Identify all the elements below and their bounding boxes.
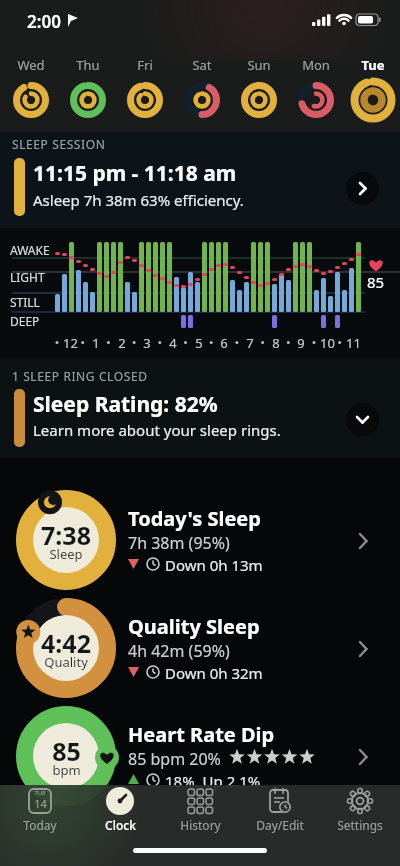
button[interactable]: 85	[0, 702, 400, 810]
staticText: 5	[195, 334, 203, 350]
staticText: Thu	[76, 56, 100, 72]
staticText: Today's Sleep	[128, 505, 261, 532]
staticText: Quality	[44, 653, 88, 671]
staticText: 1 SLEEP RING CLOSED	[12, 368, 148, 384]
staticText: AWAKE	[10, 242, 50, 258]
staticText: History	[180, 817, 221, 833]
staticText: 7	[246, 334, 254, 350]
staticText: TUE	[34, 789, 46, 797]
staticText: Today	[23, 817, 57, 833]
staticText: 10	[320, 334, 335, 350]
staticText: 9	[297, 334, 305, 350]
staticText: LIGHT	[10, 269, 45, 285]
staticText: Settings	[337, 817, 383, 833]
button[interactable]: History	[164, 785, 236, 837]
button[interactable]: Clock	[84, 785, 156, 837]
staticText: 14	[34, 796, 47, 810]
staticText: 11	[346, 334, 361, 350]
staticText: Heart Rate Dip	[128, 721, 275, 748]
staticText: 18%, Up 2.1%	[165, 771, 261, 791]
staticText: 4h 42m (59%)	[128, 640, 230, 662]
button[interactable]: Today	[4, 785, 76, 837]
staticText: 3	[143, 334, 151, 350]
staticText: Sleep Rating: 82%	[33, 390, 218, 419]
staticText: Learn more about your sleep rings.	[33, 420, 281, 440]
button[interactable]: 1 SLEEP RING CLOSED	[0, 358, 400, 458]
button[interactable]: SLEEP SESSION	[0, 132, 400, 228]
button[interactable]: Settings	[324, 785, 396, 837]
staticText: Sleep	[49, 545, 83, 563]
staticText: 8	[272, 334, 280, 350]
staticText: 6	[220, 334, 228, 350]
staticText: Wed	[17, 56, 45, 72]
staticText: 1	[92, 334, 100, 350]
staticText: Asleep 7h 38m 63% efficiency.	[33, 190, 244, 210]
staticText: DEEP	[10, 313, 40, 329]
staticText: STILL	[10, 294, 40, 310]
staticText: bpm	[52, 761, 81, 779]
staticText: Down 0h 13m	[165, 555, 263, 575]
staticText: 4	[169, 334, 177, 350]
button[interactable]	[346, 172, 379, 205]
staticText: 11:15 pm - 11:18 am	[33, 159, 237, 188]
staticText: 2:00	[27, 10, 61, 33]
staticText: Clock	[105, 817, 136, 833]
button[interactable]: 7:38	[0, 486, 400, 594]
staticText: 85	[367, 272, 385, 292]
staticText: SLEEP SESSION	[12, 136, 106, 152]
button[interactable]	[346, 403, 379, 436]
button[interactable]	[0, 0, 400, 132]
staticText: 4:42	[41, 626, 91, 656]
staticText: Mon	[302, 56, 330, 72]
staticText: 12	[63, 334, 78, 350]
staticText: Quality Sleep	[128, 613, 260, 640]
staticText: 7h 38m (95%)	[128, 532, 230, 554]
staticText: 85	[52, 734, 81, 764]
staticText: 85 bpm 20%	[128, 748, 221, 770]
staticText: Tue	[361, 56, 385, 72]
staticText: Day/Edit	[256, 817, 304, 833]
staticText: 2	[118, 334, 126, 350]
staticText: Down 0h 32m	[165, 663, 263, 683]
staticText: 7:38	[41, 518, 91, 548]
staticText: Fri	[137, 56, 153, 72]
button[interactable]: 4:42	[0, 594, 400, 702]
staticText: Sun	[247, 56, 271, 72]
button[interactable]: Day/Edit	[244, 785, 316, 837]
staticText: Sat	[192, 56, 212, 72]
